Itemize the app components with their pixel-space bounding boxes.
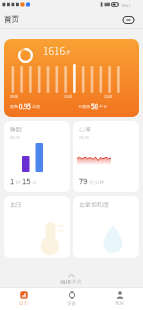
staticText: 距离	[10, 103, 19, 109]
staticText: 千卡	[98, 103, 107, 109]
staticText: 血氧饱和度	[79, 200, 110, 209]
staticText: 设备	[67, 300, 76, 307]
staticText: 79	[79, 175, 88, 187]
button[interactable]: 心率	[73, 121, 139, 192]
staticText: 睡眠	[10, 125, 23, 134]
staticText: 12:00	[64, 94, 73, 99]
staticText: 首页	[19, 300, 28, 307]
staticText: 08/29	[10, 134, 20, 140]
staticText: 08/30	[79, 134, 89, 140]
staticText: 卡路里	[78, 103, 91, 109]
button[interactable]: 1616	[4, 39, 139, 117]
staticText: 1616	[43, 43, 65, 58]
button[interactable]: 血压	[4, 196, 70, 258]
button[interactable]: 我的	[95, 287, 143, 310]
staticText: 血压	[10, 200, 23, 209]
staticText: 我的	[115, 300, 124, 307]
staticText: 24:00	[104, 94, 113, 99]
staticText: 公里	[31, 103, 40, 109]
staticText: 18:42	[121, 2, 131, 8]
staticText: 1	[10, 175, 15, 187]
button[interactable]	[122, 15, 136, 25]
staticText: 58	[91, 101, 98, 110]
button[interactable]: 睡眠	[4, 121, 70, 192]
staticText: 心率	[79, 125, 92, 134]
staticText: 00:00	[10, 94, 19, 99]
staticText: 0.95	[19, 101, 31, 110]
button[interactable]: 首页	[0, 287, 47, 310]
staticText: 编辑卡片	[60, 278, 83, 286]
button[interactable]: 编辑卡片	[0, 273, 143, 287]
staticText: 首页	[4, 13, 19, 24]
button[interactable]: 设备	[47, 287, 95, 310]
staticText: 时	[15, 179, 22, 186]
staticText: 步	[65, 49, 71, 56]
staticText: 次/分钟	[88, 179, 105, 186]
staticText: 分	[31, 179, 37, 186]
staticText: 15	[22, 175, 31, 187]
button[interactable]: 血氧饱和度	[73, 196, 139, 258]
